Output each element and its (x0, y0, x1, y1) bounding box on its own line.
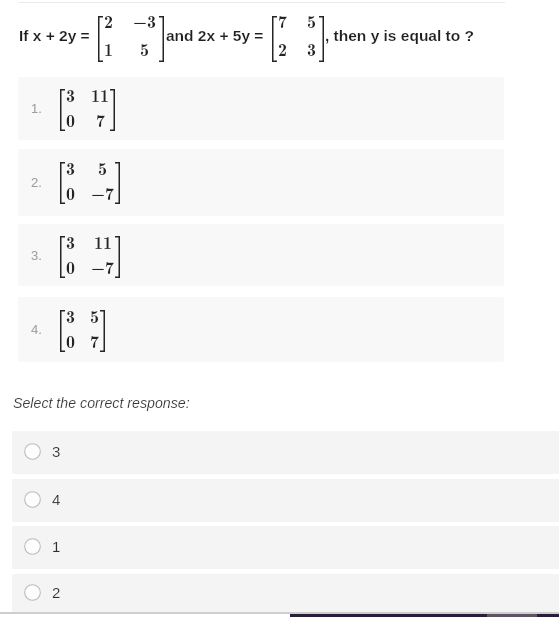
button[interactable]: Answer option 1 (12, 526, 559, 569)
button[interactable]: Answer option 2 (12, 574, 559, 613)
staticText: Select the correct response: (13, 395, 190, 411)
staticText: 2 (104, 8, 113, 34)
staticText: 0 (66, 107, 75, 133)
staticText: 11 (94, 229, 112, 255)
staticText: 3 (66, 155, 75, 181)
staticText: 5 (140, 36, 149, 62)
button[interactable]: 2. (18, 149, 504, 216)
staticText: 3 (66, 229, 75, 255)
staticText: 7 (96, 107, 105, 133)
button[interactable]: Answer option 4 (12, 479, 559, 522)
staticText: 7 (90, 328, 99, 354)
staticText: 0 (66, 328, 75, 354)
button[interactable]: 3. (18, 224, 504, 286)
staticText: , then y is equal to ? (325, 27, 474, 44)
button[interactable]: Answer option 3 (12, 431, 559, 474)
staticText: 4. (31, 322, 42, 337)
staticText: 4 (52, 491, 61, 508)
staticText: 0 (66, 180, 75, 206)
staticText: 3 (66, 82, 75, 108)
staticText: 5 (90, 303, 99, 329)
staticText: 1 (104, 36, 113, 62)
staticText: 1. (31, 101, 42, 116)
staticText: and 2x + 5y = (166, 27, 264, 44)
staticText: −3 (133, 8, 156, 34)
staticText: 2 (278, 36, 287, 62)
staticText: 2. (31, 175, 42, 190)
staticText: 11 (91, 82, 109, 108)
staticText: 0 (66, 254, 75, 280)
staticText: 7 (278, 8, 287, 34)
button[interactable]: 4. (18, 297, 504, 362)
staticText: If x + 2y = (19, 27, 90, 44)
staticText: 5 (307, 8, 316, 34)
staticText: −7 (91, 180, 114, 206)
staticText: 3 (307, 36, 316, 62)
staticText: −7 (91, 254, 114, 280)
button[interactable]: 1. (18, 77, 504, 140)
staticText: 5 (98, 155, 107, 181)
staticText: 3 (52, 443, 61, 460)
staticText: 3 (66, 303, 75, 329)
staticText: 2 (52, 584, 61, 601)
staticText: 1 (52, 538, 61, 555)
staticText: 3. (31, 248, 42, 263)
